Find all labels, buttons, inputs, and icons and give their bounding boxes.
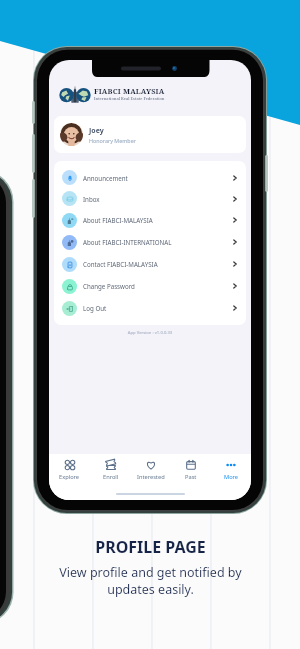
staticText: Contact FIABCI-MALAYSIA	[83, 260, 158, 268]
button[interactable]: Enroll	[90, 454, 131, 486]
staticText: View profile and get notified by updates…	[59, 564, 242, 598]
staticText: FIABCI MALAYSIA	[94, 86, 165, 96]
staticText: Change Password	[83, 282, 135, 290]
staticText: Explore	[59, 473, 80, 481]
staticText: Enroll	[103, 473, 119, 481]
staticText: About FIABCI-INTERNATIONAL	[83, 238, 172, 246]
staticText: Inbox	[83, 195, 100, 203]
button[interactable]: Log Out	[54, 297, 246, 319]
button[interactable]: Past	[171, 454, 211, 486]
button[interactable]: Change Password	[54, 275, 246, 297]
button[interactable]: Inbox	[54, 188, 246, 209]
button[interactable]: Contact FIABCI-MALAYSIA	[54, 253, 246, 275]
staticText: PROFILE PAGE	[95, 536, 206, 558]
staticText: Past	[185, 473, 197, 481]
button[interactable]: About FIABCI-MALAYSIA	[54, 209, 246, 231]
staticText: App Version : v1.0.0.33	[49, 330, 251, 336]
staticText: About FIABCI-MALAYSIA	[83, 216, 153, 224]
button[interactable]: About FIABCI-INTERNATIONAL	[54, 231, 246, 253]
button[interactable]: Explore	[49, 454, 90, 486]
staticText: Joey	[89, 126, 104, 136]
button[interactable]: Announcement	[54, 167, 246, 188]
staticText: Announcement	[83, 174, 128, 182]
staticText: Interested	[137, 473, 165, 481]
staticText: More	[224, 473, 239, 481]
staticText: Honorary Member	[89, 137, 136, 144]
button[interactable]: Joey	[54, 116, 246, 153]
staticText: Log Out	[83, 304, 107, 312]
staticText: International Real Estate Federation	[94, 96, 165, 102]
button[interactable]: More	[211, 454, 251, 486]
button[interactable]: Interested	[131, 454, 171, 486]
